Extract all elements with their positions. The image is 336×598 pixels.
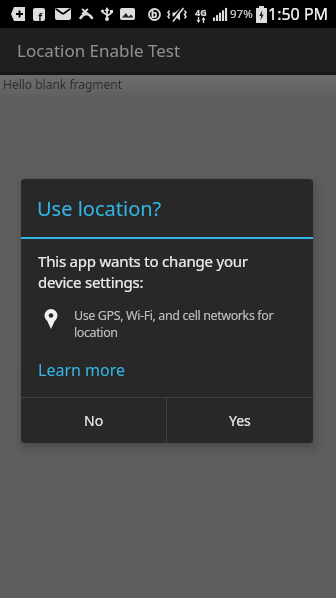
staticText: This app wants to change your device set…	[38, 251, 248, 293]
staticText: b	[151, 7, 158, 20]
staticText: No	[84, 411, 104, 430]
staticText: Use GPS, Wi-Fi, and cell networks for lo…	[74, 307, 274, 340]
button[interactable]: Yes	[167, 398, 313, 443]
staticText: 4G	[195, 6, 207, 18]
staticText: 1:50 PM	[268, 3, 329, 25]
staticText: Yes	[229, 411, 251, 430]
staticText: 97%	[230, 6, 253, 22]
staticText: Hello blank fragment	[3, 76, 123, 92]
staticText: f	[38, 9, 43, 22]
button[interactable]: No	[21, 398, 166, 443]
staticText: Use location?	[37, 195, 162, 222]
staticText: Location Enable Test	[17, 39, 181, 62]
button[interactable]: Learn more	[38, 359, 125, 381]
